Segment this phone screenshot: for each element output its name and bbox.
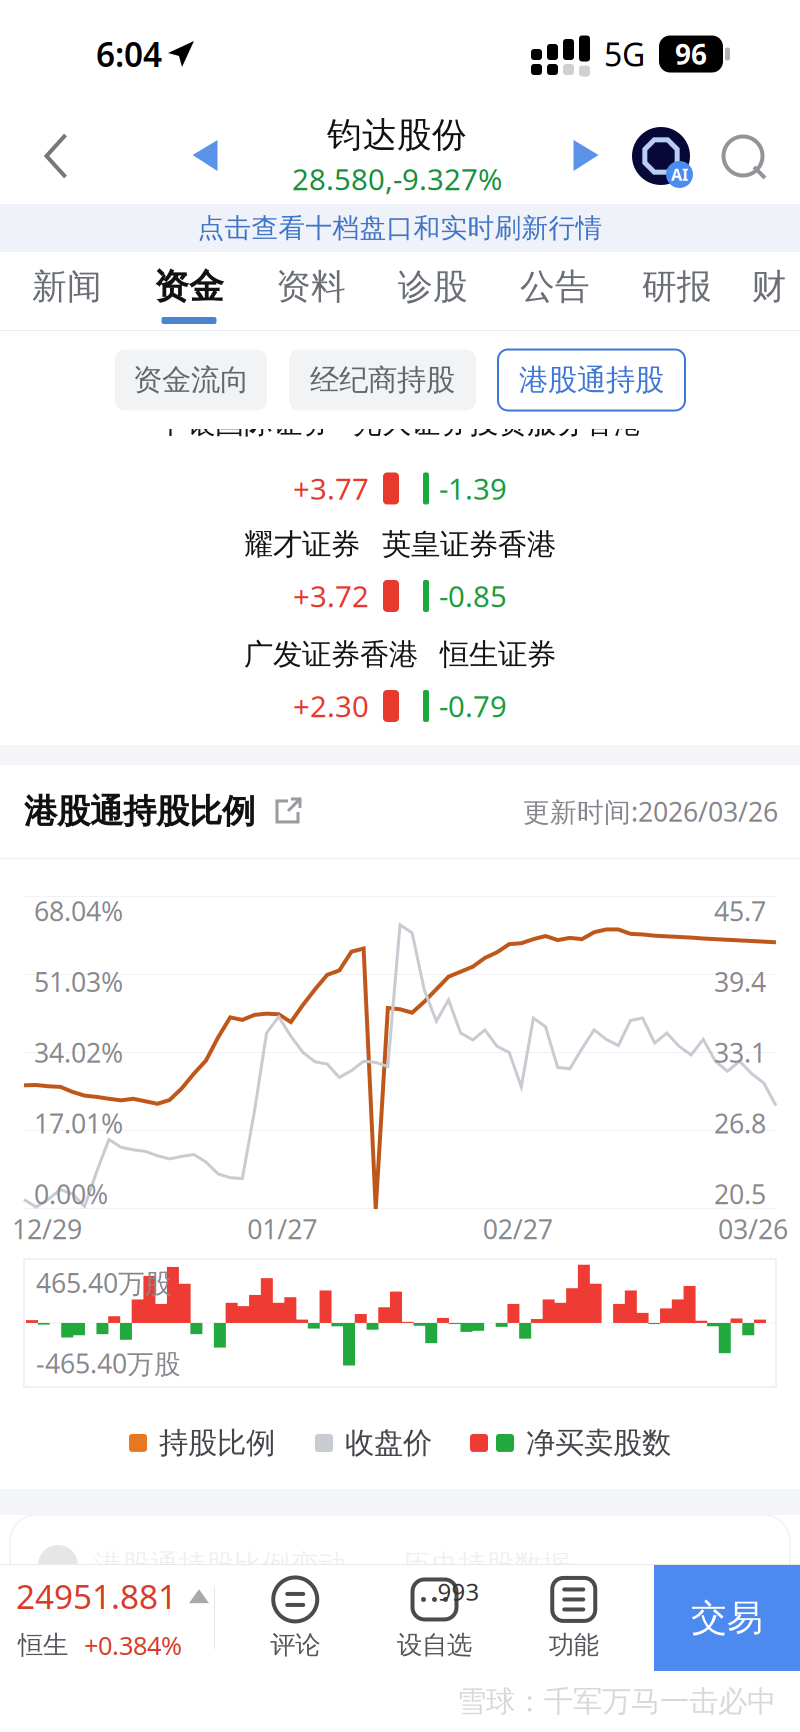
staticText: 17.01% [34, 1105, 123, 1141]
staticText: 交易 [691, 1596, 763, 1640]
button[interactable]: 研报 [616, 252, 738, 330]
staticText: 港股通持股比例 [24, 791, 255, 832]
button[interactable]: 功能 [515, 1565, 633, 1671]
button[interactable]: Previous stock [174, 110, 236, 202]
staticText: 68.04% [34, 893, 123, 929]
staticText: 39.4 [714, 964, 766, 999]
staticText: +3.77 [293, 469, 369, 508]
staticText: 03/26 [718, 1211, 788, 1247]
staticText: 01/27 [247, 1211, 317, 1247]
staticText: 993 [437, 1575, 479, 1607]
button[interactable]: 公告 [494, 252, 616, 330]
staticText: 评论 [270, 1629, 320, 1660]
staticText: AI [671, 164, 688, 185]
staticText: -0.85 [439, 576, 507, 615]
staticText: 港股通持股比例变动 历史持股数据 [94, 1548, 570, 1582]
staticText: 33.1 [714, 1035, 766, 1070]
staticText: +2.30 [293, 686, 369, 725]
staticText: 中银国际证券 [157, 405, 331, 441]
staticText: 更新时间:2026/03/26 [523, 794, 778, 829]
button[interactable]: 广发证券香港 [0, 626, 800, 736]
button[interactable]: 资金流向 [115, 349, 267, 410]
staticText: 02/27 [483, 1211, 553, 1247]
button[interactable]: AI assistant [622, 110, 700, 202]
button[interactable]: Next stock [558, 110, 614, 202]
staticText: 公告 [520, 265, 590, 308]
staticText: 恒生证券 [440, 636, 556, 672]
staticText: 新闻 [32, 265, 102, 308]
staticText: 0.00% [34, 1176, 108, 1212]
staticText: 点击查看十档盘口和实时刷新行情 [197, 212, 602, 244]
button[interactable]: 993 [375, 1565, 493, 1671]
button[interactable]: 评论 [236, 1565, 354, 1671]
staticText: 收盘价 [345, 1425, 432, 1461]
button[interactable]: 财 [738, 252, 800, 330]
staticText: +3.72 [293, 576, 369, 615]
staticText: 24951.881 [16, 1574, 177, 1618]
staticText: 设自选 [397, 1629, 472, 1660]
button[interactable]: 新闻 [6, 252, 128, 330]
button[interactable]: 经纪商持股 [289, 349, 476, 410]
staticText: 净买卖股数 [526, 1425, 671, 1461]
staticText: 6:04 [96, 32, 162, 76]
staticText: 资料 [276, 265, 346, 308]
staticText: -1.39 [439, 469, 507, 508]
staticText: 20.5 [714, 1176, 766, 1212]
staticText: 英皇证券香港 [382, 526, 556, 562]
button[interactable]: Search [706, 110, 780, 202]
staticText: 45.7 [714, 893, 766, 929]
staticText: 28.580,-9.327% [292, 159, 502, 198]
button[interactable]: Back [16, 110, 96, 202]
staticText: 资金 [154, 265, 224, 308]
staticText: 51.03% [34, 964, 123, 999]
staticText: 12/29 [12, 1211, 82, 1247]
button[interactable]: 交易 [654, 1565, 800, 1671]
staticText: 港股通持股 [519, 362, 664, 398]
staticText: 5G [604, 33, 645, 75]
staticText: 财 [751, 265, 786, 308]
staticText: -0.79 [439, 686, 507, 725]
staticText: 钧达股份 [327, 114, 467, 156]
staticText: 光大证券投资服务香港 [353, 405, 643, 441]
button[interactable]: 诊股 [372, 252, 494, 330]
staticText: 96 [675, 35, 707, 73]
staticText: 资金流向 [133, 362, 249, 398]
staticText: 雪球：千军万马一击必中 [457, 1683, 776, 1719]
staticText: 465.40万股 [36, 1265, 172, 1300]
staticText: 恒生 [18, 1630, 68, 1661]
staticText: 耀才证券 [244, 526, 360, 562]
staticText: 持股比例 [159, 1425, 275, 1461]
staticText: 研报 [642, 265, 712, 308]
staticText: 广发证券香港 [244, 636, 418, 672]
staticText: +0.384% [84, 1628, 182, 1662]
button[interactable]: 资金 [128, 252, 250, 330]
staticText: 诊股 [398, 265, 468, 308]
staticText: 经纪商持股 [310, 362, 455, 398]
button[interactable]: 耀才证券 [0, 516, 800, 626]
staticText: 26.8 [714, 1105, 766, 1141]
button[interactable]: 点击查看十档盘口和实时刷新行情 [0, 204, 800, 252]
button[interactable]: 24951.881 [0, 1565, 214, 1671]
button[interactable]: 港股通持股 [498, 349, 685, 410]
button[interactable]: 资料 [250, 252, 372, 330]
staticText: 34.02% [34, 1035, 123, 1070]
staticText: -465.40万股 [36, 1345, 181, 1381]
staticText: 功能 [549, 1629, 599, 1660]
